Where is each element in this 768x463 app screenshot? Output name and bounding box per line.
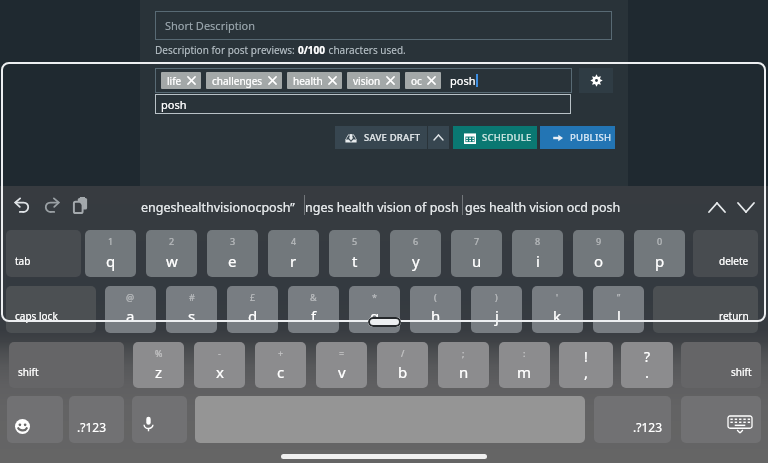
staticText: 4 xyxy=(291,235,297,247)
button[interactable]: Next suggestions xyxy=(734,195,758,219)
staticText: ; xyxy=(462,347,465,359)
button[interactable]: PUBLISH xyxy=(540,126,615,149)
button[interactable]: 6 xyxy=(390,230,441,277)
staticText: d xyxy=(248,306,258,326)
button[interactable]: @ xyxy=(105,286,156,333)
button[interactable]: health xyxy=(293,72,337,89)
button[interactable]: engeshealthvisionocposh” xyxy=(104,186,303,229)
button[interactable]: % xyxy=(133,342,184,388)
button[interactable]: # xyxy=(166,286,217,333)
button[interactable]: life xyxy=(167,72,196,89)
button[interactable]: - xyxy=(194,342,245,388)
button[interactable]: 4 xyxy=(268,230,319,277)
button[interactable]: ( xyxy=(410,286,461,333)
button[interactable]: ) xyxy=(471,286,522,333)
button[interactable]: Settings xyxy=(579,68,613,93)
staticText: o xyxy=(594,251,604,271)
button[interactable]: 2 xyxy=(146,230,197,277)
button[interactable]: life xyxy=(155,68,572,93)
staticText: 9 xyxy=(596,235,602,247)
staticText: % xyxy=(155,347,163,359)
button[interactable]: Emoji xyxy=(7,396,63,443)
staticText: 0 xyxy=(657,235,663,247)
staticText: . xyxy=(645,362,650,382)
button[interactable]: £ xyxy=(227,286,278,333)
staticText: : xyxy=(523,347,526,359)
staticText: life xyxy=(167,74,182,88)
button[interactable]: Previous suggestions xyxy=(705,195,729,219)
staticText: characters used. xyxy=(326,43,406,57)
staticText: PUBLISH xyxy=(570,131,612,144)
button[interactable]: tab xyxy=(6,230,81,277)
button[interactable]: Undo xyxy=(12,195,32,215)
staticText: nges health vision of posh xyxy=(305,199,459,216)
staticText: b xyxy=(398,362,408,382)
button[interactable]: Dictation xyxy=(132,396,187,443)
staticText: 7 xyxy=(474,235,480,247)
button[interactable]: ” xyxy=(593,286,644,333)
staticText: shift xyxy=(18,365,39,379)
button[interactable]: * xyxy=(349,286,400,333)
staticText: 3 xyxy=(230,235,236,247)
button[interactable]: 0 xyxy=(634,230,685,277)
button[interactable]: Redo xyxy=(41,195,61,215)
button[interactable]: vision xyxy=(353,72,395,89)
staticText: vision xyxy=(353,74,381,88)
button[interactable]: return xyxy=(653,286,758,333)
button[interactable]: : xyxy=(499,342,550,388)
staticText: t xyxy=(352,251,358,271)
button[interactable]: Hide keyboard xyxy=(681,396,761,443)
button[interactable]: = xyxy=(316,342,367,388)
button[interactable]: SAVE DRAFT xyxy=(335,126,427,149)
button[interactable]: oc xyxy=(411,72,436,89)
staticText: ! xyxy=(584,347,588,366)
staticText: SCHEDULE xyxy=(482,131,532,144)
button[interactable]: posh xyxy=(155,94,571,114)
staticText: / xyxy=(401,347,405,359)
button[interactable]: & xyxy=(288,286,339,333)
button[interactable]: 1 xyxy=(85,230,136,277)
button[interactable]: ges health vision ocd posh xyxy=(463,186,623,229)
staticText: .?123 xyxy=(77,419,107,435)
button[interactable]: .?123 xyxy=(69,396,124,443)
staticText: e xyxy=(228,251,237,271)
button[interactable]: 3 xyxy=(207,230,258,277)
staticText: f xyxy=(311,306,317,326)
button[interactable]: caps lock xyxy=(6,286,96,333)
button[interactable]: shift xyxy=(681,342,761,388)
staticText: challenges xyxy=(212,74,263,88)
button[interactable]: .?123 xyxy=(594,396,671,443)
staticText: v xyxy=(338,362,346,382)
button[interactable]: delete xyxy=(693,230,758,277)
button[interactable]: challenges xyxy=(212,72,277,89)
button[interactable]: Resize xyxy=(368,317,401,327)
button[interactable]: shift xyxy=(9,342,124,388)
button[interactable]: 7 xyxy=(451,230,502,277)
staticText: a xyxy=(126,306,135,326)
button[interactable]: 5 xyxy=(329,230,380,277)
button[interactable]: / xyxy=(377,342,428,388)
staticText: oc xyxy=(411,74,422,88)
staticText: & xyxy=(310,291,317,303)
staticText: j xyxy=(495,306,499,326)
button[interactable]: ! xyxy=(559,342,613,388)
staticText: z xyxy=(155,362,163,382)
button[interactable]: + xyxy=(255,342,306,388)
button[interactable]: Short Description xyxy=(155,11,612,40)
button[interactable]: ? xyxy=(621,342,673,388)
button[interactable]: 8 xyxy=(512,230,563,277)
button[interactable]: ' xyxy=(532,286,583,333)
staticText: + xyxy=(278,347,284,359)
button[interactable]: 9 xyxy=(573,230,624,277)
staticText: ” xyxy=(617,291,621,303)
button[interactable]: Paste xyxy=(70,195,90,215)
button[interactable]: More options xyxy=(428,126,449,149)
staticText: r xyxy=(290,251,297,271)
staticText: g xyxy=(370,306,380,326)
button[interactable]: nges health vision of posh xyxy=(305,186,462,229)
button[interactable]: ; xyxy=(438,342,489,388)
button[interactable]: SCHEDULE xyxy=(453,126,537,149)
staticText: 5 xyxy=(352,235,358,247)
staticText: m xyxy=(517,362,532,382)
